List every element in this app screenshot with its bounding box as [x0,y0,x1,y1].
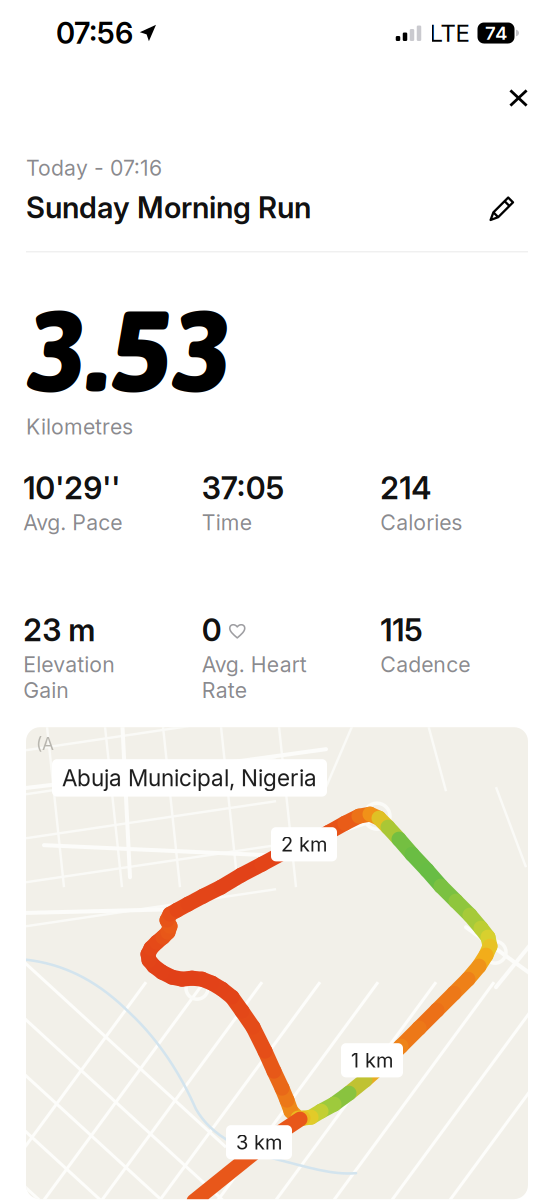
staticText: 1 km [351,1048,393,1072]
staticText: 214 [380,469,431,507]
staticText: 74 [485,22,507,44]
staticText: 3 km [236,1130,282,1154]
staticText: Today - 07:16 [26,155,162,181]
staticText: Cadence [380,651,470,677]
staticText: 23 m [23,611,95,648]
staticText: Time [202,510,252,535]
staticText: LTE [429,18,469,47]
staticText: Sunday Morning Run [26,190,311,225]
staticText: 3.53 [26,284,232,416]
staticText: Kilometres [26,414,133,439]
staticText: Abuja Municipal, Nigeria [62,764,317,792]
staticText: 0 [202,611,222,648]
staticText: 07:56 [56,15,133,51]
staticText: 2 km [281,832,327,856]
staticText: Calories [380,510,462,535]
button[interactable]: Edit workout [489,194,528,222]
button[interactable]: Close [495,75,542,121]
staticText: Avg. Pace [23,510,122,535]
staticText: Elevation Gain [23,651,115,703]
staticText: 37:05 [202,469,284,507]
staticText: 10'29'' [23,469,120,507]
staticText: Avg. Heart Rate [202,651,307,703]
staticText: 115 [380,611,422,648]
staticText: (A [36,733,54,754]
